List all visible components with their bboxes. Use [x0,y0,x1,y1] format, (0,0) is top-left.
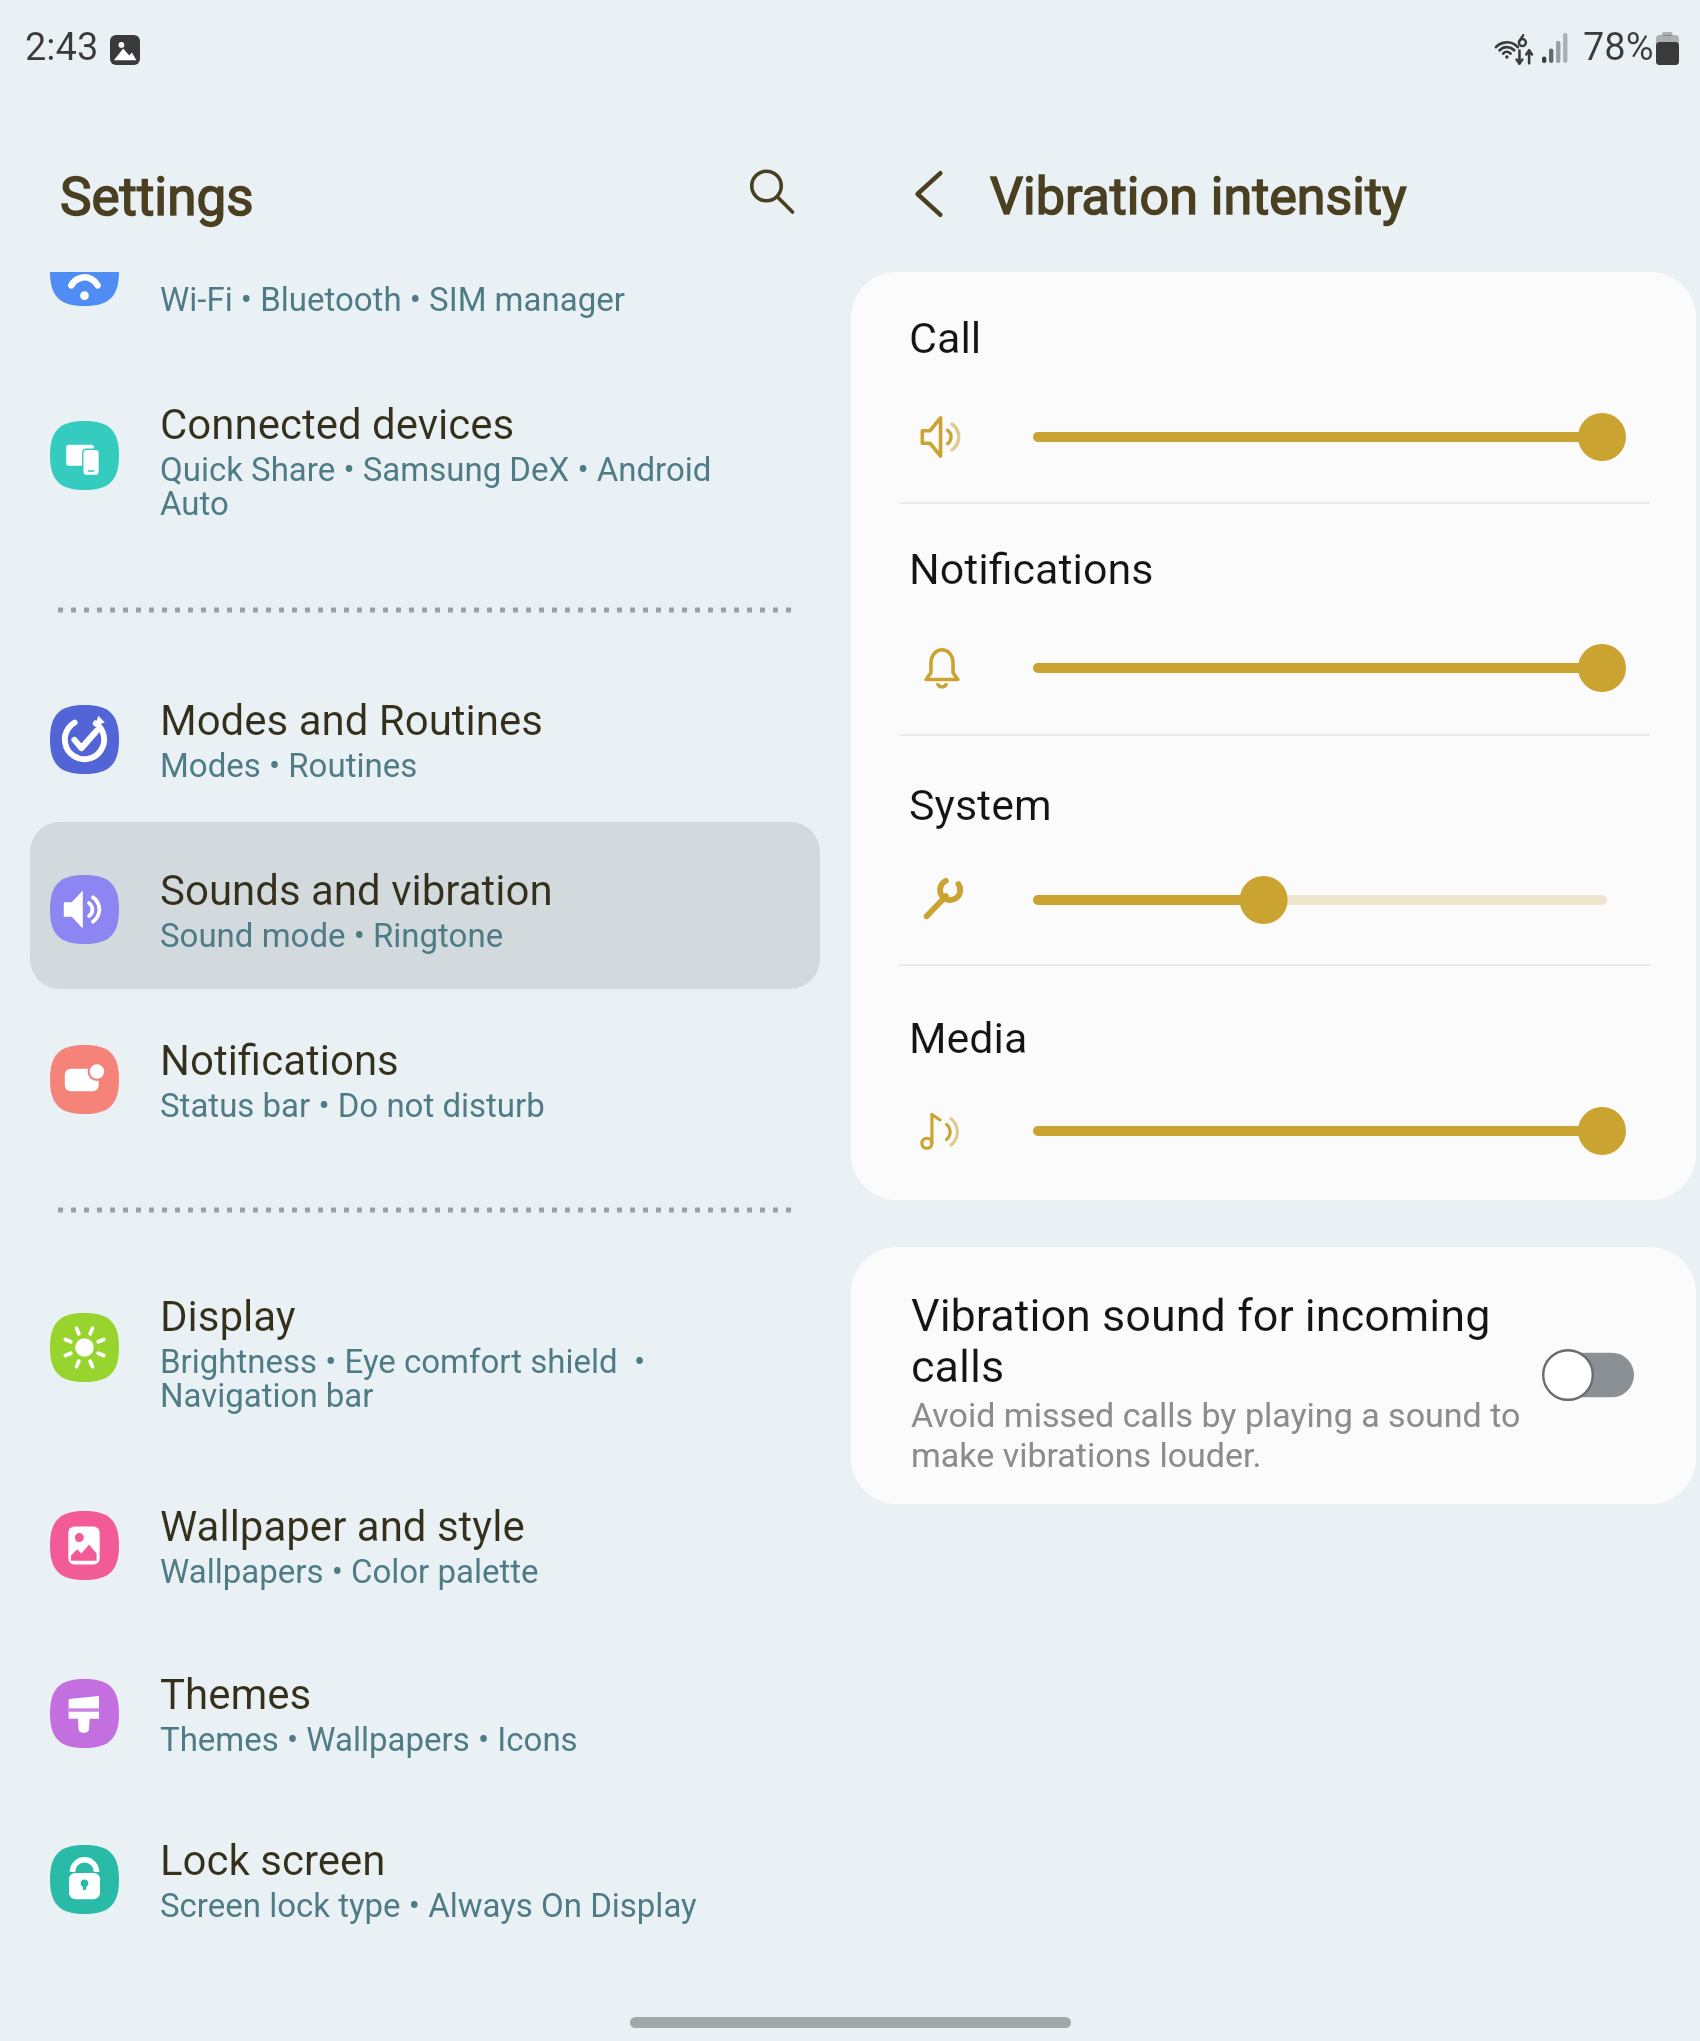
staticText: 78% [1583,25,1654,70]
staticText: Vibration intensity [990,166,1407,227]
staticText: Call [909,313,982,363]
staticText: Display [160,1273,296,1346]
staticText: Connected devices [160,381,515,454]
button[interactable]: Display [30,1247,820,1440]
button[interactable]: Modes and Routines [30,651,820,810]
staticText: calls [911,1342,1005,1393]
button[interactable]: Vibration sound for incoming calls, off [1542,1349,1634,1401]
button[interactable]: Wi-Fi • Bluetooth • SIM manager [30,272,820,338]
button[interactable]: System vibration intensity [1023,870,1623,930]
button[interactable]: Back [888,152,972,236]
button[interactable]: Call vibration intensity [1023,407,1623,467]
staticText: Auto [160,488,229,522]
staticText: Themes • Wallpapers • Icons [160,1724,578,1758]
staticText: Brightness • Eye comfort shield • [160,1346,646,1380]
button[interactable]: Notifications vibration intensity [1023,638,1623,698]
staticText: 2:43 [25,25,99,70]
staticText: Status bar • Do not disturb [160,1090,545,1124]
staticText: Settings [60,166,254,228]
staticText: System [909,780,1052,830]
button[interactable]: Themes [30,1625,820,1784]
staticText: Navigation bar [160,1380,374,1414]
staticText: Wi-Fi • Bluetooth • SIM manager [160,280,625,319]
button[interactable]: Notifications [30,991,820,1150]
staticText: Quick Share • Samsung DeX • Android [160,454,712,488]
staticText: Wallpaper and style [160,1483,525,1556]
staticText: Modes and Routines [160,677,543,750]
button[interactable]: Connected devices [30,355,820,548]
staticText: Lock screen [160,1817,386,1890]
staticText: Notifications [909,544,1154,594]
button[interactable]: Lock screen [30,1791,820,1950]
button[interactable]: Media vibration intensity [1023,1101,1623,1161]
staticText: Media [909,1013,1028,1063]
button[interactable]: Sounds and vibration [30,821,820,980]
staticText: Screen lock type • Always On Display [160,1890,697,1924]
staticText: make vibrations louder. [911,1435,1262,1475]
button[interactable]: Vibration sound for incoming [851,1247,1696,1504]
staticText: Themes [160,1651,312,1724]
staticText: Notifications [160,1017,399,1090]
staticText: Vibration sound for incoming [911,1291,1491,1342]
staticText: Wallpapers • Color palette [160,1556,539,1590]
staticText: Sounds and vibration [160,847,553,920]
staticText: Sound mode • Ringtone [160,920,504,954]
button[interactable]: Wallpaper and style [30,1457,820,1616]
staticText: Modes • Routines [160,750,418,784]
staticText: Avoid missed calls by playing a sound to [911,1395,1521,1435]
button[interactable]: Search [729,149,813,233]
